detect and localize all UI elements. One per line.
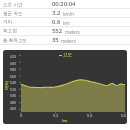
staticText: 거리 (3, 19, 13, 25)
staticText: 0.4 (87, 113, 93, 118)
staticText: 미터 (4, 80, 10, 90)
staticText: 620 (10, 54, 16, 59)
staticText: 480 (10, 100, 16, 105)
staticText: 최고점 (3, 28, 17, 34)
staticText: 500 (10, 93, 16, 98)
staticText: km (62, 118, 68, 123)
staticText: km/h (63, 11, 75, 17)
staticText: 600 (10, 61, 16, 66)
staticText: 0.6 (52, 18, 61, 26)
staticText: 460 (10, 106, 16, 111)
staticText: 540 (10, 80, 16, 85)
staticText: 0.6 (121, 113, 127, 118)
staticText: 고도 (63, 52, 72, 58)
staticText: 580 (10, 67, 16, 72)
staticText: 35 (52, 36, 59, 44)
staticText: km (63, 20, 70, 26)
staticText: 00:20:04 (52, 0, 76, 8)
staticText: 560 (10, 74, 16, 79)
staticText: meters (61, 38, 76, 44)
staticText: 0.2 (53, 113, 59, 118)
staticText: 520 (10, 87, 16, 92)
staticText: 평균 속도 (3, 10, 23, 16)
staticText: 0 (20, 113, 23, 118)
staticText: meters (65, 29, 80, 35)
staticText: 3.2 (52, 9, 61, 17)
staticText: 소요 시간 (3, 1, 23, 7)
staticText: 총 획득고도 (3, 37, 28, 43)
staticText: 552 (52, 27, 63, 35)
